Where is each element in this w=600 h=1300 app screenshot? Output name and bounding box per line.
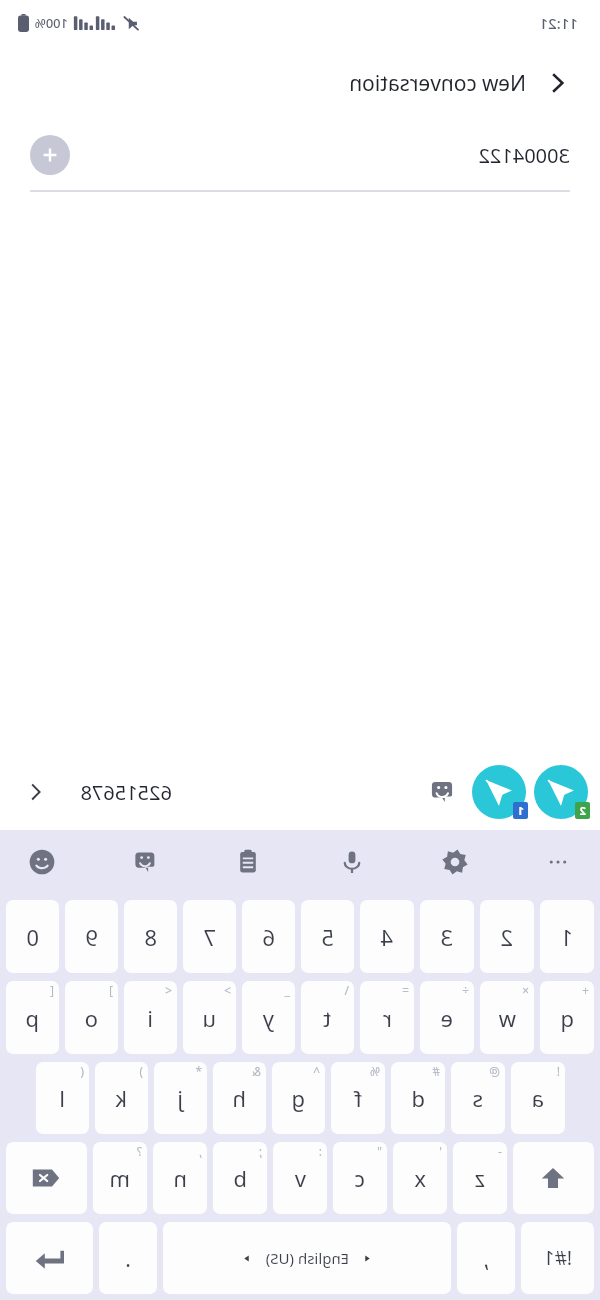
other: Shift bbox=[539, 1164, 567, 1192]
staticText: 6 bbox=[262, 922, 275, 952]
button[interactable]: m bbox=[93, 1142, 147, 1214]
button[interactable]: more bbox=[534, 838, 582, 886]
staticText: s bbox=[472, 1083, 483, 1113]
button[interactable]: e bbox=[420, 981, 474, 1054]
button[interactable]: Add recipient bbox=[30, 135, 70, 175]
button[interactable]: Expand bbox=[14, 770, 58, 814]
button[interactable]: v bbox=[273, 1142, 327, 1214]
staticText: ^ bbox=[313, 1063, 320, 1079]
button[interactable]: b bbox=[213, 1142, 267, 1214]
staticText: z bbox=[474, 1163, 485, 1193]
staticText: 62515678 bbox=[80, 779, 172, 806]
button[interactable]: j bbox=[154, 1062, 207, 1134]
staticText: ÷ bbox=[462, 982, 469, 998]
other: Enter bbox=[34, 1243, 64, 1273]
staticText: " bbox=[377, 1143, 382, 1159]
button[interactable]: p bbox=[6, 981, 59, 1054]
button[interactable]: l bbox=[36, 1062, 89, 1134]
button[interactable]: z bbox=[453, 1142, 507, 1214]
button[interactable]: w bbox=[480, 981, 534, 1054]
button[interactable]: 2 bbox=[480, 900, 534, 973]
button[interactable]: 1 bbox=[540, 900, 594, 973]
staticText: ' bbox=[439, 1143, 442, 1159]
button[interactable]: x bbox=[393, 1142, 447, 1214]
button[interactable]: Stickers bbox=[420, 770, 464, 814]
staticText: × bbox=[522, 982, 529, 998]
staticText: 30004122 bbox=[70, 142, 570, 169]
staticText: ] bbox=[109, 982, 113, 998]
staticText: f bbox=[354, 1083, 362, 1113]
staticText: 5 bbox=[321, 922, 334, 952]
button[interactable]: t bbox=[301, 981, 354, 1054]
button[interactable]: i bbox=[124, 981, 177, 1054]
button[interactable]: Settings bbox=[431, 838, 479, 886]
button[interactable]: !#1 bbox=[521, 1222, 594, 1294]
staticText: 0 bbox=[26, 922, 39, 952]
button[interactable]: 4 bbox=[360, 900, 414, 973]
button[interactable]: 9 bbox=[65, 900, 118, 973]
button[interactable]: 8 bbox=[124, 900, 177, 973]
staticText: 100% bbox=[34, 14, 68, 32]
staticText: & bbox=[252, 1063, 261, 1079]
button[interactable]: Backspace bbox=[6, 1142, 87, 1214]
staticText: u bbox=[202, 1003, 216, 1033]
button[interactable]: Clipboard bbox=[224, 838, 272, 886]
button[interactable]: s bbox=[451, 1062, 505, 1134]
button[interactable]: d bbox=[391, 1062, 445, 1134]
button[interactable]: 0 bbox=[6, 900, 59, 973]
staticText: y bbox=[262, 1003, 274, 1033]
button[interactable]: o bbox=[65, 981, 118, 1054]
button[interactable]: , bbox=[457, 1222, 515, 1294]
button[interactable]: Send with SIM 2 bbox=[530, 761, 592, 823]
staticText: k bbox=[115, 1083, 127, 1113]
button[interactable]: 7 bbox=[183, 900, 236, 973]
staticText: t bbox=[323, 1003, 331, 1033]
staticText: 3 bbox=[440, 922, 453, 952]
staticText: _ bbox=[284, 982, 290, 998]
button[interactable]: Back bbox=[534, 59, 582, 107]
button[interactable]: q bbox=[540, 981, 594, 1054]
staticText: x bbox=[414, 1163, 426, 1193]
button[interactable]: English (US) bbox=[163, 1222, 451, 1294]
staticText: ? bbox=[136, 1143, 142, 1159]
staticText: v bbox=[294, 1163, 306, 1193]
button[interactable]: a bbox=[511, 1062, 565, 1134]
staticText: < bbox=[165, 982, 172, 998]
button[interactable]: k bbox=[95, 1062, 148, 1134]
button[interactable]: . bbox=[99, 1222, 157, 1294]
staticText: n bbox=[173, 1163, 187, 1193]
button[interactable]: Send with SIM 1 bbox=[468, 761, 530, 823]
button[interactable]: 5 bbox=[301, 900, 354, 973]
button[interactable]: c bbox=[333, 1142, 387, 1214]
staticText: m bbox=[109, 1163, 130, 1193]
staticText: 1 bbox=[560, 922, 573, 952]
button[interactable]: r bbox=[360, 981, 414, 1054]
button[interactable]: n bbox=[153, 1142, 207, 1214]
staticText: ! bbox=[556, 1063, 560, 1079]
staticText: \ bbox=[344, 982, 349, 998]
button[interactable]: g bbox=[272, 1062, 325, 1134]
staticText: 4 bbox=[380, 922, 393, 952]
staticText: * bbox=[195, 1063, 202, 1079]
button[interactable]: 3 bbox=[420, 900, 474, 973]
button[interactable]: u bbox=[183, 981, 236, 1054]
button[interactable]: Shift bbox=[513, 1142, 594, 1214]
button[interactable]: Voice input bbox=[328, 838, 376, 886]
button[interactable]: y bbox=[242, 981, 295, 1054]
staticText: o bbox=[84, 1003, 98, 1033]
button[interactable]: Enter bbox=[6, 1222, 93, 1294]
staticText: > bbox=[224, 982, 231, 998]
button[interactable]: h bbox=[213, 1062, 266, 1134]
staticText: e bbox=[440, 1003, 453, 1033]
staticText: 8 bbox=[144, 922, 157, 952]
staticText: p bbox=[25, 1003, 39, 1033]
button[interactable]: Stickers bbox=[121, 838, 169, 886]
staticText: j bbox=[177, 1083, 183, 1113]
staticText: b bbox=[233, 1163, 247, 1193]
button[interactable]: 6 bbox=[242, 900, 295, 973]
button[interactable]: f bbox=[331, 1062, 385, 1134]
staticText: [ bbox=[50, 982, 54, 998]
staticText: 2 bbox=[579, 803, 586, 818]
staticText: q bbox=[560, 1003, 574, 1033]
button[interactable]: Emoji bbox=[18, 838, 66, 886]
